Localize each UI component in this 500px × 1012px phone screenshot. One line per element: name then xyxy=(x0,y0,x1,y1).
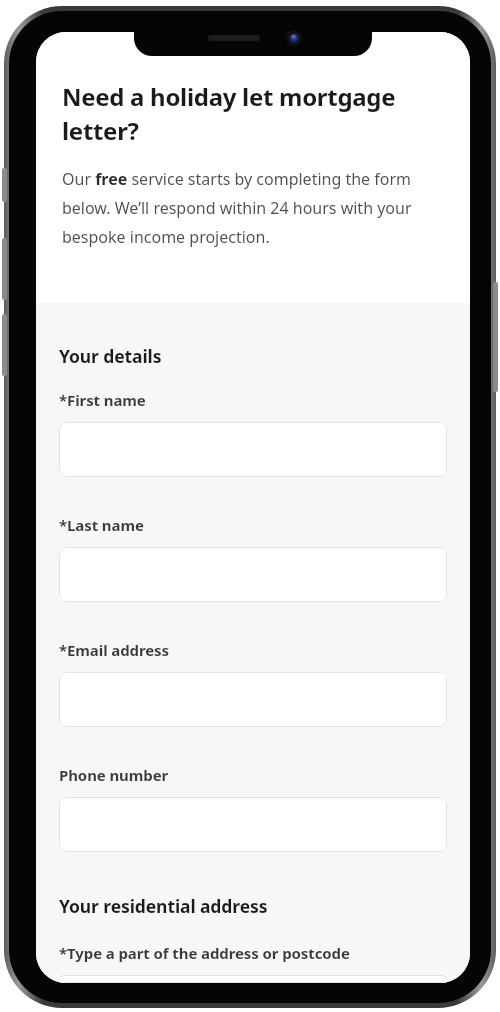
staticText: *Email address xyxy=(59,640,169,660)
staticText: Your residential address xyxy=(59,894,268,918)
button[interactable]: Power xyxy=(493,282,498,392)
button[interactable]: Volume up xyxy=(2,238,7,300)
button[interactable]: Phone number xyxy=(59,797,447,852)
staticText: *Type a part of the address or postcode xyxy=(59,943,350,963)
button[interactable]: Address or postcode xyxy=(59,975,447,983)
button[interactable]: Mute switch xyxy=(2,168,7,202)
staticText: Your details xyxy=(59,344,162,368)
staticText: *Last name xyxy=(59,515,144,535)
button[interactable]: First name xyxy=(59,422,447,477)
staticText: *First name xyxy=(59,390,146,410)
button[interactable]: Last name xyxy=(59,547,447,602)
staticText: Our free service starts by completing th… xyxy=(62,168,444,247)
button[interactable]: Email address xyxy=(59,672,447,727)
staticText: Need a holiday let mortgage letter? xyxy=(62,80,444,147)
staticText: Phone number xyxy=(59,765,169,785)
button[interactable]: Volume down xyxy=(2,314,7,376)
